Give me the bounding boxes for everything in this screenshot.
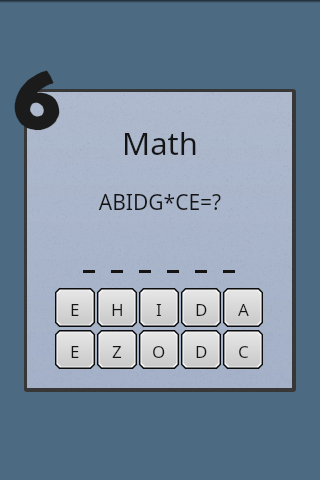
button[interactable]: C bbox=[223, 330, 263, 369]
button[interactable]: I bbox=[139, 288, 179, 327]
staticText: O bbox=[152, 340, 166, 363]
button[interactable]: A bbox=[223, 288, 263, 327]
button[interactable]: E bbox=[55, 330, 95, 369]
button[interactable]: H bbox=[97, 288, 137, 327]
staticText: C bbox=[238, 340, 249, 363]
staticText: I bbox=[156, 298, 162, 321]
button[interactable]: D bbox=[181, 330, 221, 369]
staticText: ABIDG*CE=? bbox=[0, 188, 320, 217]
staticText: E bbox=[70, 340, 80, 363]
staticText: Math bbox=[0, 122, 320, 164]
staticText: A bbox=[238, 298, 249, 321]
button[interactable]: Z bbox=[97, 330, 137, 369]
staticText: 6 bbox=[13, 51, 61, 157]
button[interactable]: E bbox=[55, 288, 95, 327]
staticText: E bbox=[70, 298, 80, 321]
button[interactable]: D bbox=[181, 288, 221, 327]
staticText: Z bbox=[112, 340, 122, 363]
button[interactable]: O bbox=[139, 330, 179, 369]
staticText: H bbox=[111, 298, 124, 321]
staticText: D bbox=[195, 298, 208, 321]
staticText: D bbox=[195, 340, 208, 363]
